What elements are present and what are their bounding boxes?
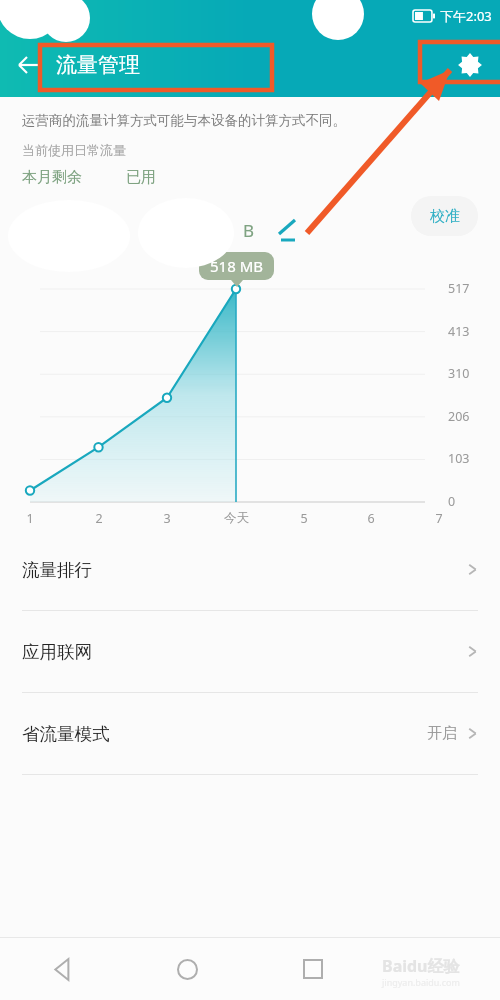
staticText: 517	[448, 280, 470, 297]
button[interactable]: 流量排行	[0, 529, 500, 610]
staticText: 应用联网	[22, 641, 92, 663]
staticText: Baidu经验	[382, 955, 460, 977]
button[interactable]: Recents	[250, 938, 375, 1000]
staticText: 206	[448, 408, 470, 425]
staticText: 省流量模式	[22, 723, 110, 745]
button[interactable]: Back	[0, 938, 125, 1000]
staticText: 413	[448, 323, 470, 340]
staticText: 1	[26, 510, 34, 527]
button[interactable]: 省流量模式	[0, 693, 500, 774]
staticText: jingyan.baidu.com	[382, 976, 460, 988]
staticText: 7	[435, 510, 443, 527]
staticText: 流量排行	[22, 559, 92, 581]
staticText: 今天	[224, 510, 249, 526]
staticText: 当前使用日常流量	[22, 142, 126, 158]
staticText: 运营商的流量计算方式可能与本设备的计算方式不同。	[22, 112, 346, 129]
staticText: 103	[448, 450, 470, 467]
button[interactable]: 校准	[411, 196, 478, 236]
staticText: 下午2:03	[440, 7, 492, 25]
button[interactable]: 应用联网	[0, 611, 500, 692]
staticText: 流量管理	[56, 52, 140, 78]
staticText: 本月剩余	[22, 168, 82, 187]
staticText: 已用	[126, 168, 156, 187]
button[interactable]: Home	[125, 938, 250, 1000]
staticText: 2	[95, 510, 103, 527]
staticText: B	[243, 219, 255, 242]
button[interactable]: 流量管理	[56, 44, 140, 86]
staticText: 5	[300, 510, 308, 527]
button[interactable]: Back	[0, 37, 56, 93]
staticText: 518 MB	[210, 256, 263, 276]
staticText: 开启	[427, 724, 457, 743]
staticText: 0	[448, 493, 456, 510]
button[interactable]: Settings	[440, 35, 500, 95]
staticText: 310	[448, 365, 470, 382]
staticText: 校准	[430, 207, 460, 226]
staticText: 6	[367, 510, 375, 527]
staticText: 3	[163, 510, 171, 527]
